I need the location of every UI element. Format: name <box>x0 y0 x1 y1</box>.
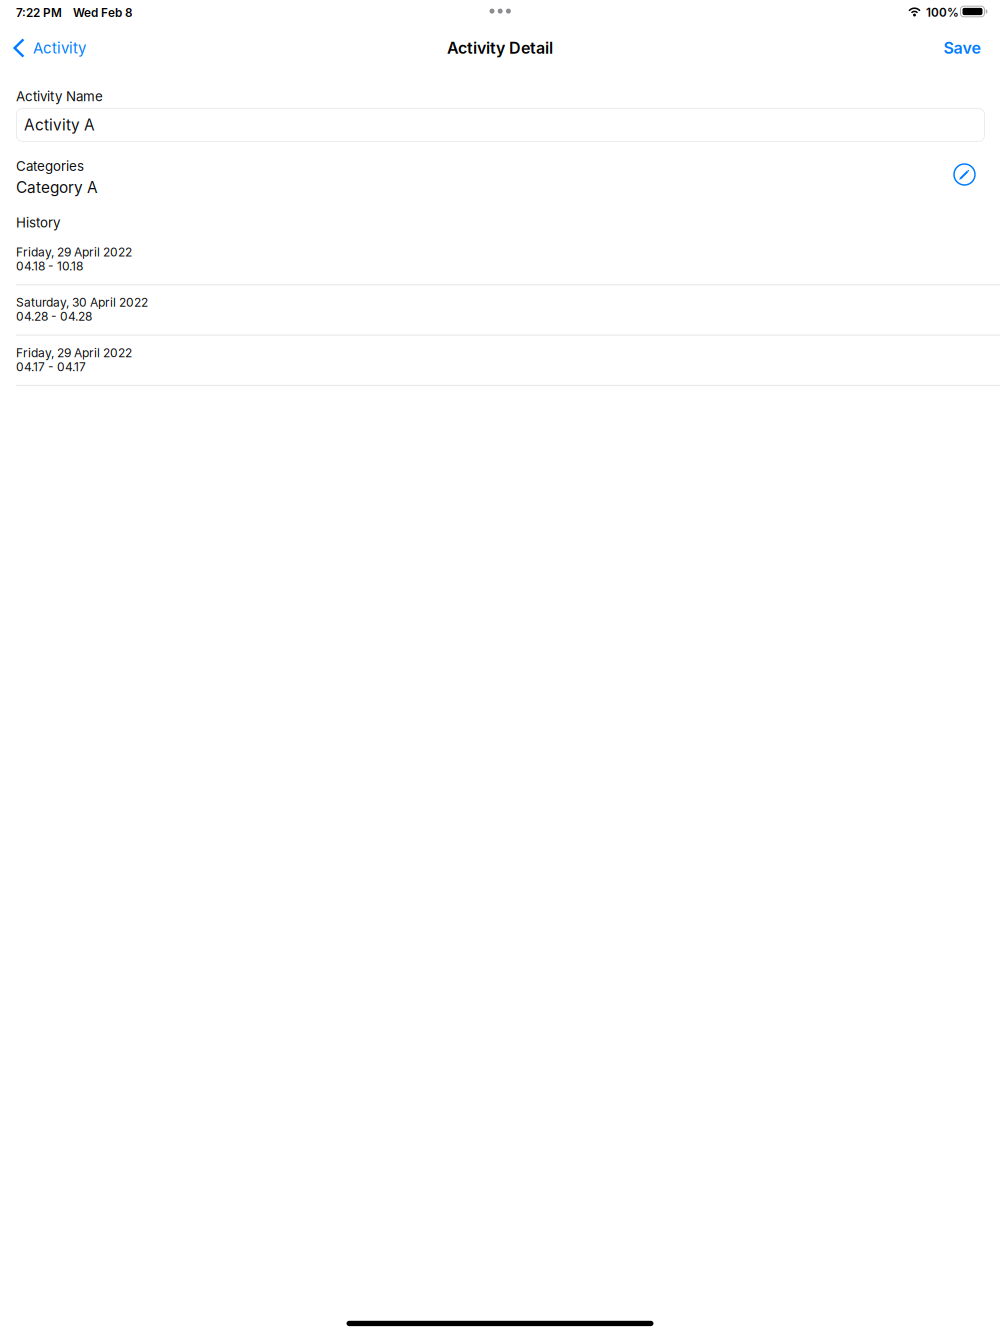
staticText: Friday, 29 April 2022 <box>16 345 132 360</box>
staticText: Saturday, 30 April 2022 <box>16 295 148 310</box>
staticText: 7:22 PM <box>16 6 62 20</box>
button[interactable]: Activity <box>0 26 98 70</box>
staticText: Friday, 29 April 2022 <box>16 245 132 259</box>
staticText: Activity Name <box>16 88 103 104</box>
staticText: Save <box>943 38 980 58</box>
staticText: Category A <box>16 178 98 197</box>
staticText: Activity Detail <box>447 38 553 58</box>
staticText: History <box>16 215 60 231</box>
button[interactable]: Saturday, 30 April 2022 <box>0 290 1000 341</box>
staticText: Activity A <box>24 116 95 134</box>
staticText: Wed Feb 8 <box>73 6 133 20</box>
button[interactable]: Activity A <box>16 108 984 141</box>
staticText: 100% <box>926 5 959 20</box>
staticText: 04.17 - 04.17 <box>16 359 86 374</box>
staticText: 04.28 - 04.28 <box>16 309 92 324</box>
staticText: 04.18 - 10.18 <box>16 259 83 273</box>
staticText: Categories <box>16 158 84 174</box>
button[interactable]: Save <box>923 26 1000 70</box>
staticText: Activity <box>33 39 86 57</box>
button[interactable]: Edit category <box>945 155 984 194</box>
button[interactable]: Friday, 29 April 2022 <box>0 341 1000 391</box>
button[interactable]: Friday, 29 April 2022 <box>0 240 1000 290</box>
